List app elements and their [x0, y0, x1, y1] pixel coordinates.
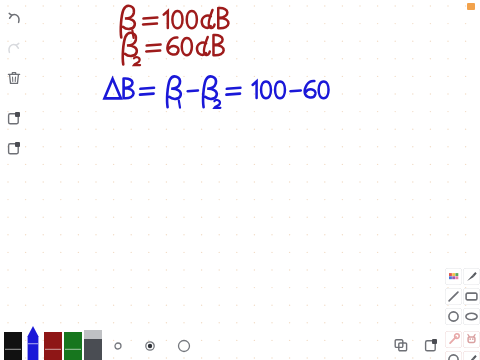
button[interactable]: Delete — [2, 66, 26, 90]
button[interactable]: Thin — [108, 336, 128, 356]
button[interactable]: Ellipse — [463, 308, 480, 325]
button[interactable]: More — [445, 351, 462, 360]
button[interactable]: Stamp — [463, 351, 480, 360]
button[interactable]: Colors — [445, 268, 462, 285]
button[interactable]: Thick — [174, 336, 194, 356]
button[interactable]: Medium — [140, 336, 160, 356]
button[interactable]: Redo — [2, 36, 26, 60]
button[interactable]: Pen — [4, 332, 22, 360]
button[interactable]: Pen — [44, 332, 62, 360]
button[interactable]: Eraser — [84, 330, 102, 360]
button[interactable]: Paste page — [420, 334, 442, 356]
button[interactable]: Tools — [445, 331, 462, 348]
button[interactable]: Rectangle — [463, 288, 480, 305]
button[interactable]: Line — [445, 288, 462, 305]
button[interactable]: Pen — [64, 332, 82, 360]
button[interactable]: Copy — [2, 106, 26, 130]
button[interactable]: Pen — [24, 326, 42, 360]
button[interactable]: Undo — [2, 6, 26, 30]
button[interactable]: Paste — [2, 136, 26, 160]
button[interactable]: Duplicate — [390, 334, 412, 356]
button[interactable]: Shapes — [463, 331, 480, 348]
button[interactable]: Circle — [445, 308, 462, 325]
button[interactable]: Brush — [463, 268, 480, 285]
